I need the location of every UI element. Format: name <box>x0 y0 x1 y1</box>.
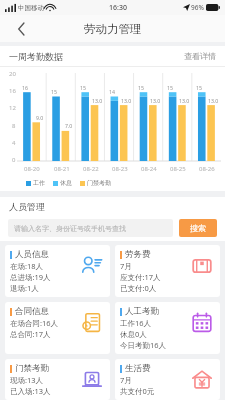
staticText: 工作 <box>33 179 45 187</box>
staticText: 13.0 <box>92 97 103 104</box>
staticText: 7月 <box>120 375 132 385</box>
staticText: 查看详情 <box>184 51 216 61</box>
staticText: 13.0 <box>121 97 132 104</box>
staticText: 08-20 <box>24 165 40 173</box>
staticText: 门禁考勤 <box>15 363 49 374</box>
staticText: 应支付:17人 <box>120 272 161 282</box>
button[interactable]: 一周考勤数据 <box>0 46 225 66</box>
button[interactable]: 劳务费 <box>115 245 220 297</box>
staticText: 0 <box>12 156 16 164</box>
staticText: 15 <box>167 84 173 91</box>
staticText: 08-22 <box>83 165 99 173</box>
staticText: 已支付:0人 <box>120 283 157 293</box>
staticText: 4 <box>12 139 16 147</box>
staticText: 16 <box>9 87 16 95</box>
staticText: 已入场:13人 <box>10 386 51 396</box>
staticText: 工作16人 <box>120 318 152 328</box>
staticText: 劳务费 <box>125 249 151 260</box>
button[interactable]: 生活费 <box>115 359 220 400</box>
button[interactable]: 搜索 <box>179 219 217 237</box>
staticText: 15 <box>51 88 57 95</box>
staticText: 15 <box>138 84 144 91</box>
staticText: 15 <box>196 84 202 91</box>
staticText: 7.0 <box>65 122 73 129</box>
staticText: 今日考勤16人 <box>120 340 167 350</box>
staticText: 7月 <box>120 261 132 271</box>
staticText: 人员信息 <box>15 249 49 260</box>
staticText: 08-25 <box>170 165 186 173</box>
staticText: 12 <box>9 104 16 112</box>
staticText: 9.0 <box>36 114 44 121</box>
staticText: 休息0人 <box>120 329 147 339</box>
button[interactable]: 请输入名字、身份证号或手机号查找 <box>8 219 173 237</box>
staticText: 生活费 <box>125 363 151 374</box>
staticText: 08-26 <box>199 165 215 173</box>
button[interactable]: 返回 <box>10 18 32 40</box>
staticText: 总合同:17人 <box>10 329 51 339</box>
staticText: 合同信息 <box>15 306 49 317</box>
staticText: 20 <box>9 70 16 78</box>
staticText: 一周考勤数据 <box>9 51 63 62</box>
staticText: 8 <box>12 122 16 130</box>
staticText: 13.0 <box>150 97 161 104</box>
staticText: 08-21 <box>54 165 70 173</box>
button[interactable]: 门禁考勤 <box>5 359 110 400</box>
staticText: 总进场:19人 <box>10 272 51 282</box>
staticText: 14 <box>109 88 115 95</box>
staticText: 门禁考勤 <box>87 179 111 187</box>
staticText: 在场:18人 <box>10 261 44 271</box>
button[interactable]: 合同信息 <box>5 302 110 354</box>
staticText: 休息 <box>60 179 72 187</box>
staticText: 15 <box>80 84 86 91</box>
staticText: 16 <box>22 84 28 91</box>
staticText: 13.0 <box>179 97 190 104</box>
button[interactable]: 人员信息 <box>5 245 110 297</box>
staticText: 人员管理 <box>9 201 45 212</box>
staticText: 退场:1人 <box>10 283 39 293</box>
staticText: 16:30 <box>109 3 127 13</box>
staticText: 96% <box>191 3 204 12</box>
staticText: 现场:13人 <box>10 375 44 385</box>
staticText: 劳动力管理 <box>84 22 142 36</box>
staticText: 08-24 <box>141 165 157 173</box>
staticText: 08-23 <box>112 165 128 173</box>
button[interactable]: 人工考勤 <box>115 302 220 354</box>
staticText: 共支付0元 <box>120 386 155 396</box>
staticText: 13.0 <box>208 97 219 104</box>
staticText: 在场合同:16人 <box>10 318 59 328</box>
staticText: 人工考勤 <box>125 306 159 317</box>
staticText: 搜索 <box>190 223 206 233</box>
staticText: 请输入名字、身份证号或手机号查找 <box>14 224 126 233</box>
staticText: 中国移动 <box>18 4 44 12</box>
